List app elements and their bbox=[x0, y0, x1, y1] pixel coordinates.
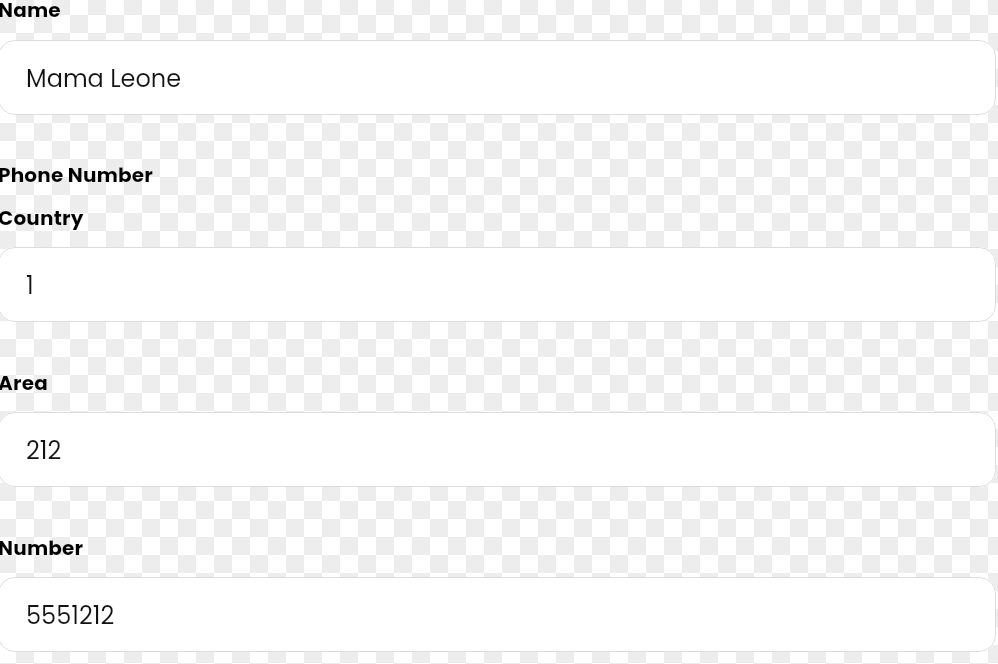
staticText: Mama Leone bbox=[26, 62, 182, 96]
button[interactable]: 5551212 bbox=[0, 577, 996, 652]
staticText: Area bbox=[0, 369, 48, 397]
staticText: 212 bbox=[26, 434, 62, 468]
staticText: 5551212 bbox=[26, 599, 115, 633]
staticText: Name bbox=[0, 0, 61, 24]
button[interactable]: 212 bbox=[0, 412, 996, 487]
staticText: Phone Number bbox=[0, 161, 154, 189]
button[interactable]: 1 bbox=[0, 247, 996, 322]
button[interactable]: Mama Leone bbox=[0, 40, 996, 115]
staticText: 1 bbox=[26, 269, 34, 303]
staticText: Number bbox=[0, 534, 84, 562]
staticText: Country bbox=[0, 204, 84, 232]
